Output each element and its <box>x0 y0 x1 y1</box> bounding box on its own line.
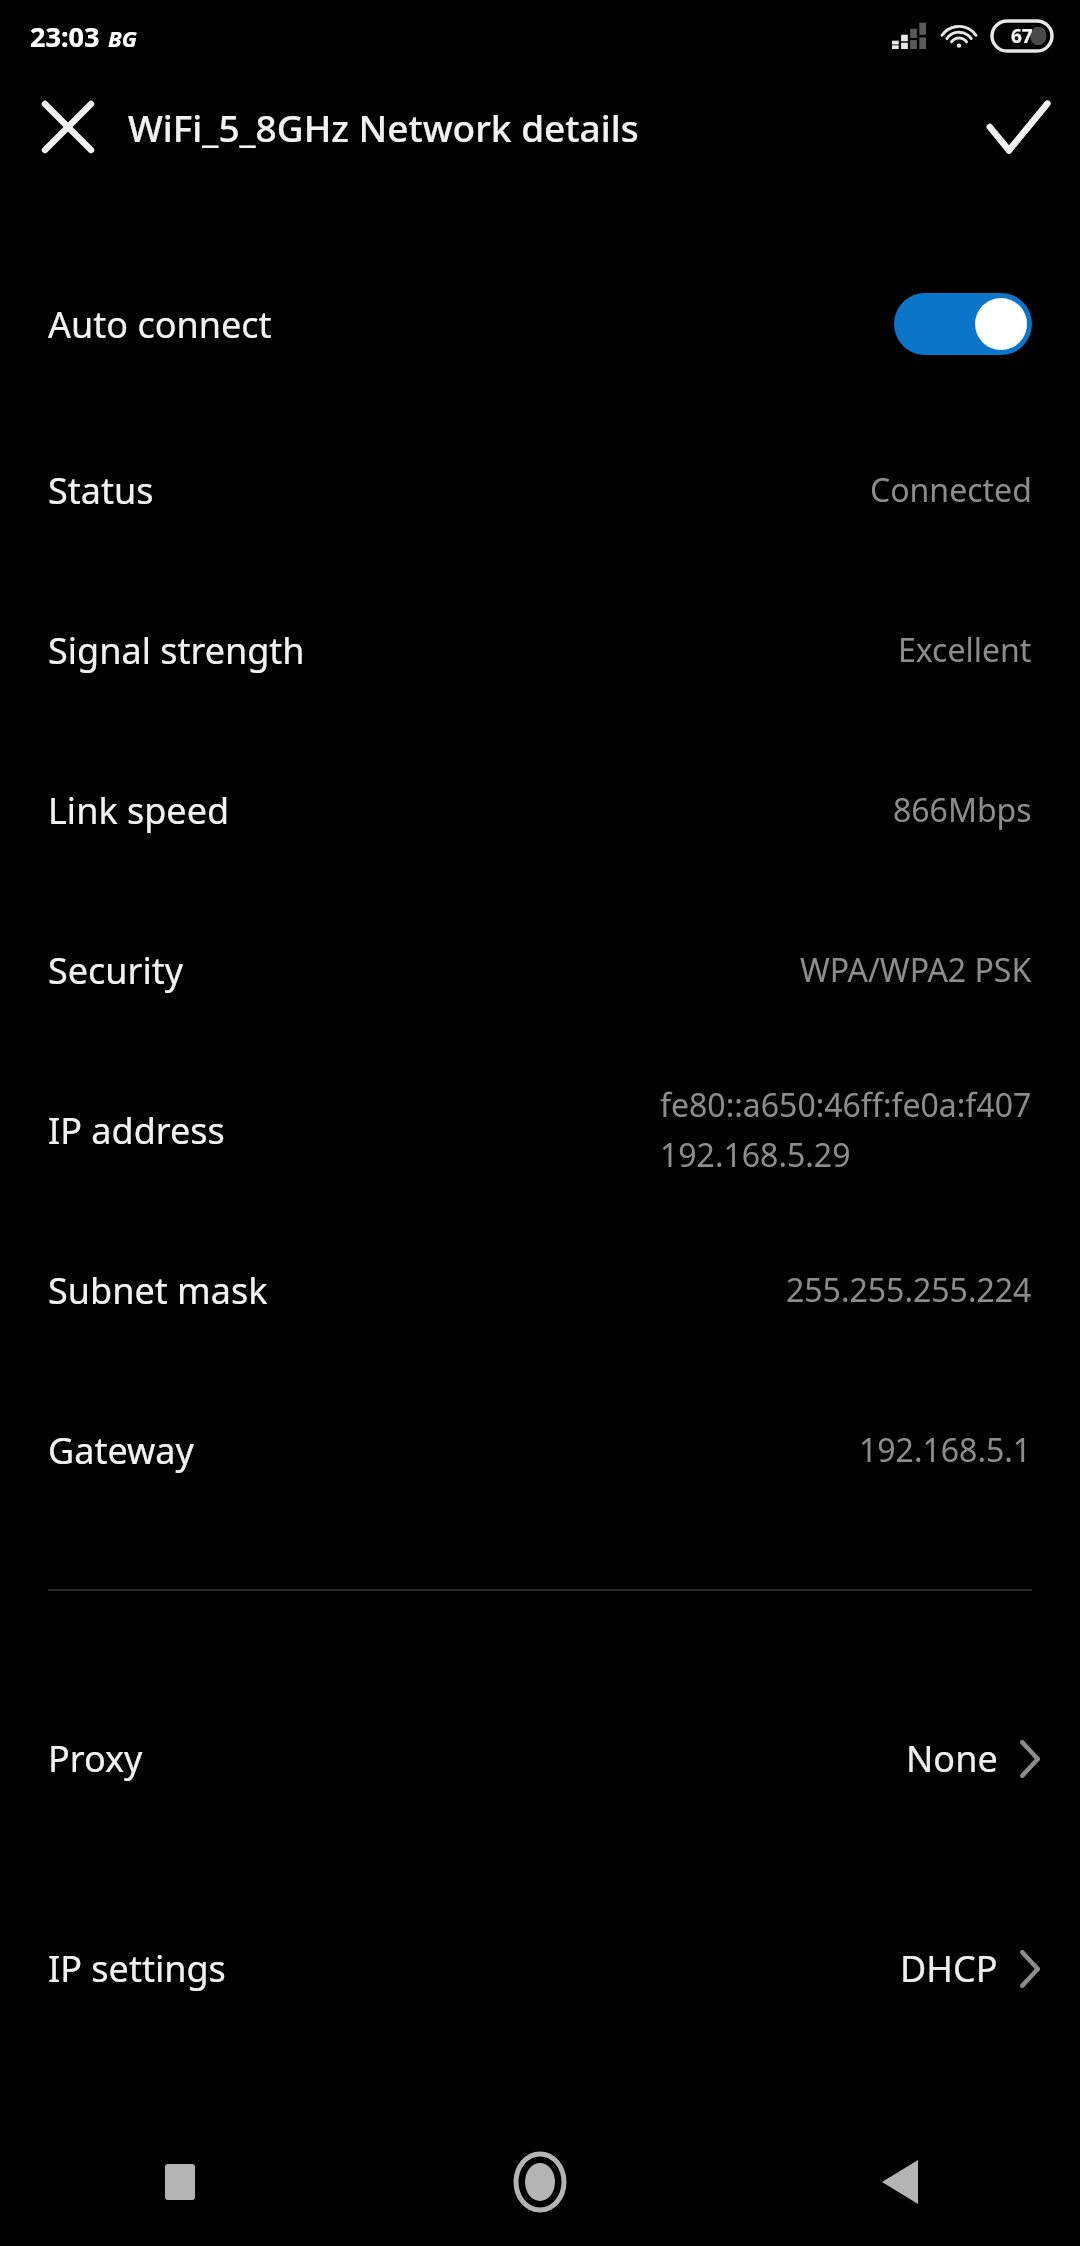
button[interactable]: Proxy <box>0 1700 1080 1816</box>
button[interactable]: Gateway <box>0 1395 1080 1505</box>
staticText: BG <box>108 23 137 53</box>
button[interactable]: Auto connect <box>0 254 1080 394</box>
button[interactable]: IP address <box>0 1075 1080 1185</box>
staticText: Connected <box>870 468 1032 512</box>
button[interactable]: Subnet mask <box>0 1235 1080 1345</box>
staticText: None <box>906 1734 998 1783</box>
staticText: 67 <box>1011 23 1033 49</box>
staticText: Security <box>48 946 184 995</box>
button[interactable]: Security <box>0 915 1080 1025</box>
button[interactable]: IP settings <box>0 1910 1080 2026</box>
staticText: Status <box>48 466 154 515</box>
staticText: Proxy <box>48 1734 143 1783</box>
staticText: Excellent <box>898 628 1032 672</box>
staticText: DHCP <box>900 1944 998 1993</box>
staticText: Subnet mask <box>48 1266 268 1315</box>
button[interactable]: Home <box>360 2130 720 2246</box>
staticText: Signal strength <box>48 626 305 675</box>
button[interactable]: Close <box>30 89 106 165</box>
staticText: 23:03 <box>30 18 100 55</box>
button[interactable]: Link speed <box>0 755 1080 865</box>
staticText: IP settings <box>48 1944 226 1993</box>
staticText: 192.168.5.29 <box>660 1133 851 1177</box>
staticText: 255.255.255.224 <box>786 1268 1032 1312</box>
button[interactable]: Back <box>720 2130 1080 2246</box>
staticText: WiFi_5_8GHz Network details <box>128 102 639 152</box>
staticText: Gateway <box>48 1426 194 1475</box>
staticText: fe80::a650:46ff:fe0a:f407 <box>660 1083 1032 1127</box>
button[interactable]: Save <box>978 87 1058 167</box>
staticText: 192.168.5.1 <box>859 1428 1032 1472</box>
staticText: IP address <box>48 1106 225 1155</box>
button[interactable]: Signal strength <box>0 595 1080 705</box>
button[interactable]: Recents <box>0 2130 360 2246</box>
staticText: 866Mbps <box>893 788 1032 832</box>
other: Auto connect toggle <box>894 293 1032 355</box>
staticText: WPA/WPA2 PSK <box>800 948 1032 992</box>
staticText: Link speed <box>48 786 230 835</box>
button[interactable]: Status <box>0 435 1080 545</box>
staticText: Auto connect <box>48 300 272 349</box>
